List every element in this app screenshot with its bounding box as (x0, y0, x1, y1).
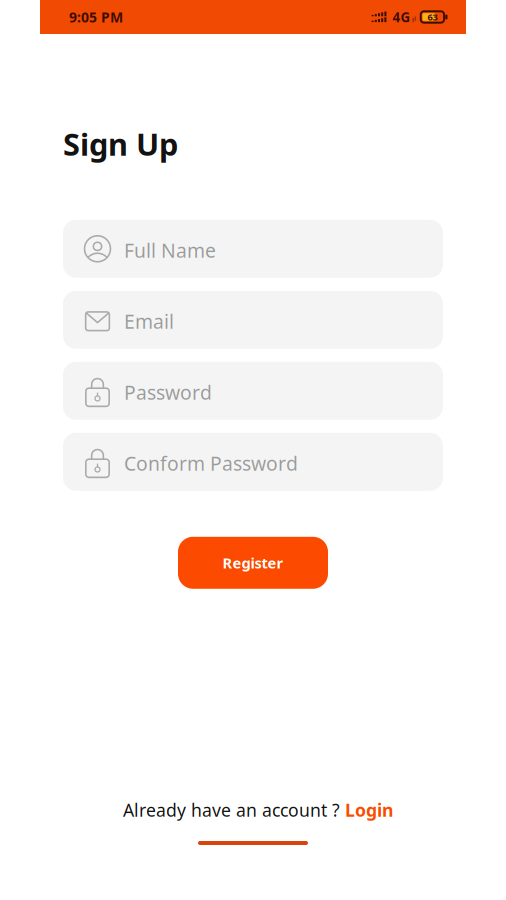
staticText: 9:05 PM (69, 7, 123, 27)
button[interactable]: Password (63, 362, 443, 420)
button[interactable]: Login (345, 798, 393, 822)
button[interactable]: Full Name (63, 220, 443, 278)
button[interactable]: Register (178, 537, 328, 589)
staticText: Full Name (124, 237, 216, 263)
staticText: Conform Password (124, 450, 298, 476)
staticText: Register (222, 553, 283, 573)
button[interactable]: Email (63, 291, 443, 349)
staticText: 63 (427, 11, 437, 23)
staticText: Email (124, 308, 174, 334)
staticText: Already have an account ? (123, 798, 340, 822)
staticText: Password (124, 379, 212, 405)
staticText: Login (345, 798, 393, 822)
staticText: 4G (393, 8, 411, 26)
button[interactable]: Conform Password (63, 433, 443, 491)
staticText: Sign Up (63, 123, 178, 165)
